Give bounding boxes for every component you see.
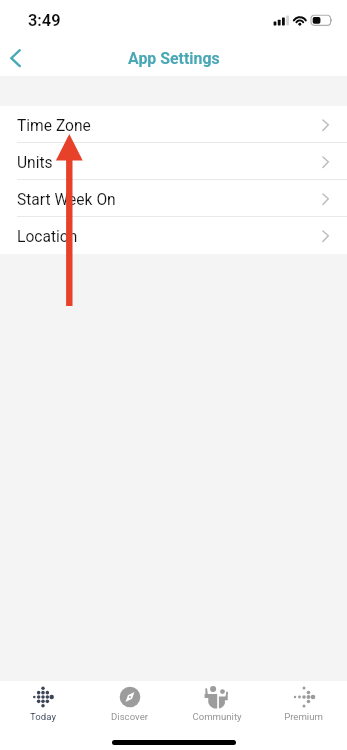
button[interactable]: Location — [0, 217, 347, 254]
staticText: Community — [192, 711, 242, 722]
button[interactable]: Discover — [86, 681, 173, 750]
staticText: Units — [17, 154, 53, 172]
button[interactable]: Back — [2, 42, 36, 76]
staticText: Start Week On — [17, 191, 116, 209]
button[interactable]: Units — [0, 143, 347, 180]
button[interactable]: Time Zone — [0, 106, 347, 143]
button[interactable]: Today — [0, 681, 86, 750]
staticText: App Settings — [128, 49, 220, 68]
staticText: 3:49 — [28, 11, 61, 30]
staticText: Discover — [111, 711, 148, 722]
button[interactable]: Start Week On — [0, 180, 347, 217]
button[interactable]: Community — [173, 681, 260, 750]
staticText: Premium — [284, 711, 323, 722]
staticText: Today — [30, 711, 56, 722]
staticText: Location — [17, 228, 78, 246]
staticText: Time Zone — [17, 117, 91, 135]
button[interactable]: Premium — [260, 681, 347, 750]
